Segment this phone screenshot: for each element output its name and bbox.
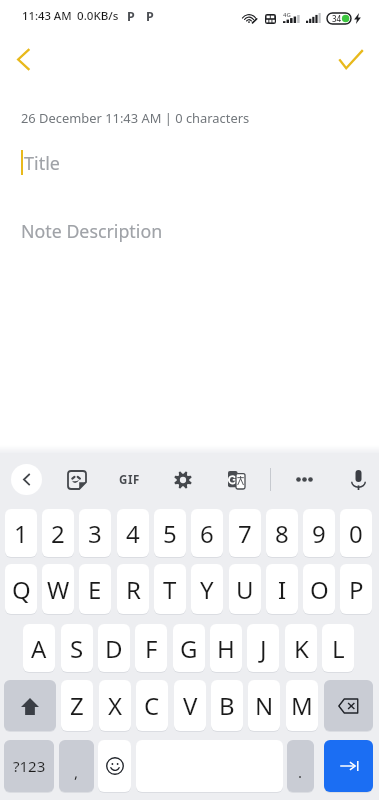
button[interactable]: 8 <box>266 509 298 557</box>
button[interactable]: Translate <box>221 464 252 495</box>
staticText: Y <box>200 573 214 606</box>
staticText: P <box>146 8 154 25</box>
staticText: G <box>180 632 198 665</box>
staticText: 26 December 11:43 AM | 0 characters <box>21 109 250 127</box>
button[interactable]: , <box>59 740 94 792</box>
button[interactable]: D <box>98 624 130 672</box>
staticText: C <box>144 689 160 722</box>
staticText: N <box>255 689 274 722</box>
button[interactable]: R <box>117 564 149 614</box>
staticText: 2 <box>51 517 65 550</box>
button[interactable]: P <box>340 564 372 614</box>
staticText: M <box>291 689 313 722</box>
button[interactable]: Shift <box>4 680 56 731</box>
button[interactable]: Z <box>61 680 93 731</box>
button[interactable]: X <box>99 680 131 731</box>
button[interactable]: 1 <box>5 509 37 557</box>
staticText: Note Description <box>21 219 163 243</box>
staticText: B <box>219 689 235 722</box>
staticText: H <box>217 632 235 665</box>
button[interactable]: Stickers <box>61 464 92 495</box>
button[interactable]: M <box>286 680 318 731</box>
staticText: 7 <box>238 517 252 550</box>
staticText: I <box>278 573 287 606</box>
staticText: . <box>298 762 303 782</box>
button[interactable]: Note Description <box>0 210 379 250</box>
staticText: 4G <box>283 11 291 19</box>
button[interactable]: 2 <box>42 509 74 557</box>
button[interactable]: N <box>248 680 280 731</box>
staticText: Title <box>24 151 60 176</box>
staticText: , <box>74 762 79 782</box>
button[interactable]: Back <box>0 36 46 82</box>
staticText: D <box>105 632 123 665</box>
button[interactable]: . <box>287 740 314 792</box>
button[interactable]: Y <box>191 564 223 614</box>
button[interactable]: E <box>79 564 111 614</box>
button[interactable]: C <box>136 680 168 731</box>
button[interactable]: G <box>173 624 205 672</box>
button[interactable]: H <box>210 624 242 672</box>
button[interactable]: 5 <box>154 509 186 557</box>
button[interactable]: B <box>211 680 243 731</box>
staticText: 34 <box>332 13 342 24</box>
button[interactable]: O <box>303 564 335 614</box>
staticText: S <box>70 632 84 665</box>
staticText: Q <box>12 573 31 606</box>
staticText: R <box>126 573 141 606</box>
button[interactable]: Enter <box>324 740 373 792</box>
staticText: E <box>88 573 102 606</box>
staticText: W <box>47 573 70 606</box>
staticText: 6 <box>200 517 214 550</box>
button[interactable]: 4 <box>117 509 149 557</box>
button[interactable]: S <box>61 624 93 672</box>
button[interactable]: Voice input <box>343 464 374 495</box>
staticText: X <box>108 689 123 722</box>
button[interactable]: I <box>266 564 298 614</box>
button[interactable]: 3 <box>79 509 111 557</box>
button[interactable]: Title <box>0 140 379 186</box>
staticText: 5 <box>163 517 177 550</box>
staticText: 9 <box>312 517 326 550</box>
button[interactable]: Close toolbar <box>11 464 42 495</box>
button[interactable]: Backspace <box>324 680 373 731</box>
staticText: J <box>260 632 267 665</box>
button[interactable]: 7 <box>229 509 261 557</box>
button[interactable]: A <box>23 624 55 672</box>
button[interactable]: More options <box>289 464 320 495</box>
button[interactable]: J <box>247 624 279 672</box>
button[interactable]: L <box>322 624 354 672</box>
staticText: L <box>332 632 345 665</box>
staticText: O <box>310 573 329 606</box>
button[interactable]: W <box>42 564 74 614</box>
button[interactable]: GIF <box>114 464 145 495</box>
staticText: V <box>183 689 198 722</box>
staticText: A <box>31 632 47 665</box>
button[interactable]: 0 <box>340 509 372 557</box>
button[interactable]: K <box>285 624 317 672</box>
staticText: K <box>294 632 309 665</box>
staticText: 1 <box>14 517 28 550</box>
staticText: GIF <box>119 472 140 488</box>
button[interactable]: V <box>174 680 206 731</box>
staticText: F <box>145 632 158 665</box>
staticText: 3 <box>88 517 102 550</box>
staticText: 11:43 AM <box>22 8 72 23</box>
staticText: P <box>349 573 364 606</box>
button[interactable]: Q <box>5 564 37 614</box>
staticText: U <box>236 573 254 606</box>
staticText: T <box>163 573 177 606</box>
button[interactable]: Settings <box>167 464 198 495</box>
staticText: 8 <box>275 517 289 550</box>
button[interactable]: 9 <box>303 509 335 557</box>
button[interactable]: Save note <box>328 36 374 82</box>
button[interactable]: Emoji <box>98 740 131 792</box>
button[interactable]: F <box>135 624 167 672</box>
staticText: ?123 <box>13 756 46 776</box>
button[interactable]: 6 <box>191 509 223 557</box>
button[interactable]: T <box>154 564 186 614</box>
button[interactable]: ?123 <box>4 740 54 792</box>
staticText: 4 <box>126 517 140 550</box>
button[interactable]: U <box>229 564 261 614</box>
